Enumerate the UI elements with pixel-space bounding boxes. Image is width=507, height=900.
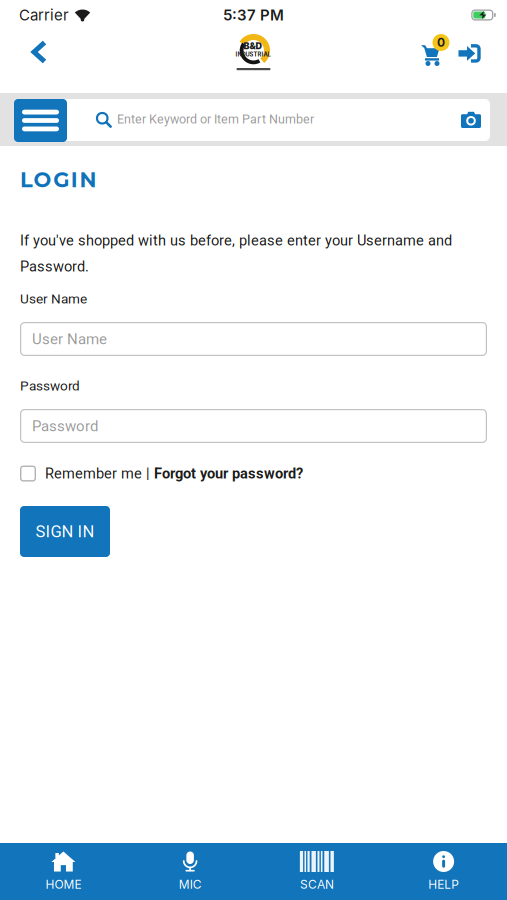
staticText: Forgot your password? xyxy=(154,465,303,482)
staticText: SCAN xyxy=(300,877,334,891)
staticText: SIGN IN xyxy=(35,522,94,541)
button[interactable]: MIC xyxy=(127,851,254,891)
staticText: INDUSTRIAL xyxy=(235,51,270,58)
staticText: Password. xyxy=(20,258,89,275)
button[interactable]: SIGN IN xyxy=(20,506,110,557)
staticText: 0 xyxy=(437,35,445,50)
button[interactable]: Remember me xyxy=(20,466,36,482)
button[interactable]: HOME xyxy=(0,851,127,891)
button[interactable]: SCAN xyxy=(253,851,380,891)
staticText: User Name xyxy=(32,330,107,348)
staticText: User Name xyxy=(20,291,87,307)
button[interactable]: Search by photo xyxy=(461,111,481,129)
staticText: MIC xyxy=(179,877,202,891)
button[interactable]: Back xyxy=(0,30,47,64)
staticText: If you've shopped with us before, please… xyxy=(20,232,452,249)
button[interactable]: Menu xyxy=(14,99,67,142)
staticText: Password xyxy=(32,417,98,435)
button[interactable]: Sign in xyxy=(458,44,482,64)
staticText: Remember me | xyxy=(45,465,154,482)
staticText: HELP xyxy=(428,877,459,891)
staticText: Password xyxy=(20,378,80,394)
staticText: LOGIN xyxy=(20,167,96,193)
button[interactable]: HELP xyxy=(380,851,507,891)
staticText: Enter Keyword or Item Part Number xyxy=(117,112,314,127)
button[interactable]: Cart xyxy=(420,34,450,66)
button[interactable]: Forgot your password? xyxy=(154,465,303,482)
staticText: 5:37 PM xyxy=(223,6,284,24)
staticText: HOME xyxy=(45,877,81,891)
staticText: Carrier xyxy=(19,6,69,24)
staticText: B&D xyxy=(243,40,262,51)
